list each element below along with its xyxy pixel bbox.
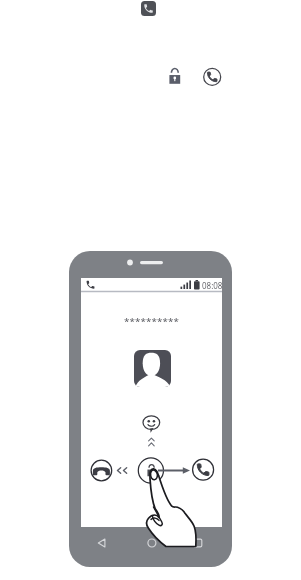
button[interactable]: Phone app [141, 1, 156, 16]
button[interactable]: Lock [165, 62, 187, 84]
staticText: ********** [124, 315, 179, 328]
button[interactable]: Contact photo [134, 350, 171, 387]
button[interactable]: Call [201, 66, 223, 88]
staticText: 08:08 [202, 280, 223, 291]
